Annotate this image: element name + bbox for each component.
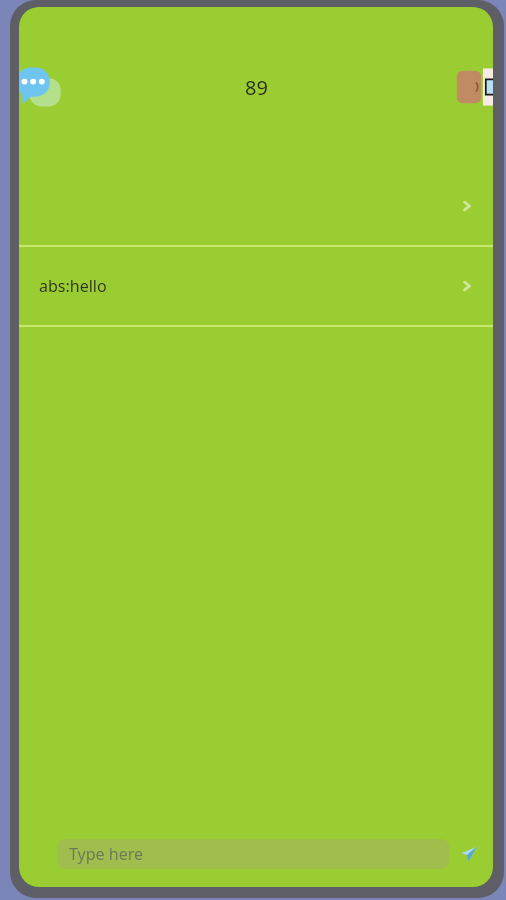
staticText: Type here: [69, 843, 143, 865]
button[interactable]: Type here: [57, 839, 449, 869]
button[interactable]: abs:hello: [19, 247, 493, 325]
button[interactable]: Messages: [19, 60, 65, 114]
staticText: 89: [245, 74, 268, 101]
staticText: abs:hello: [39, 275, 107, 297]
button[interactable]: [19, 167, 493, 245]
button[interactable]: Send: [457, 843, 479, 865]
button[interactable]: Log out: [451, 58, 493, 116]
